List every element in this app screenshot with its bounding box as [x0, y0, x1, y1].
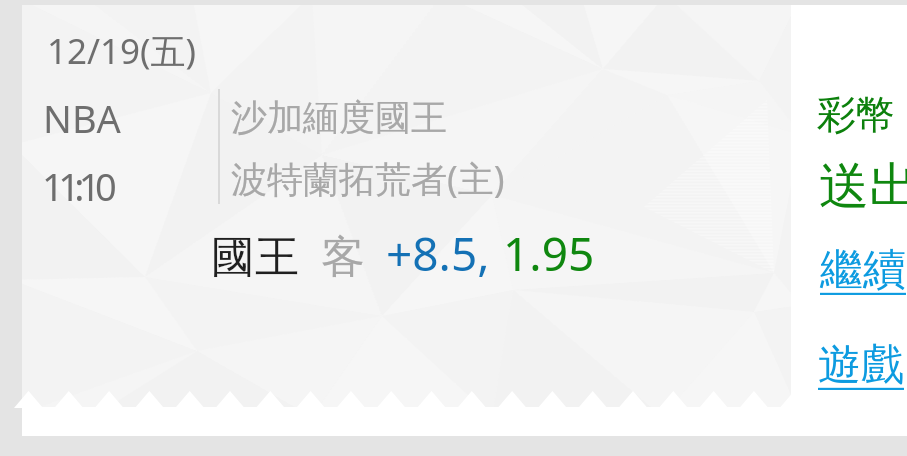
button[interactable]: 繼續 [820, 243, 906, 297]
staticText: NBA [43, 92, 121, 144]
staticText: 國王 [211, 230, 299, 285]
staticText: 送出 [819, 155, 907, 218]
staticText: 沙加緬度國王 [231, 95, 447, 140]
button[interactable]: 12/19(五) [22, 5, 791, 436]
staticText: 1.95 [503, 222, 595, 285]
staticText: 遊戲 [818, 338, 904, 392]
staticText: 客 [321, 230, 365, 285]
staticText: 彩幣 [817, 90, 895, 139]
button[interactable]: 遊戲 [818, 338, 904, 392]
staticText: 12/19(五) [47, 27, 197, 75]
staticText: 繼續 [820, 243, 906, 297]
button[interactable]: 送出 [819, 155, 907, 218]
staticText: 11:10 [42, 160, 112, 212]
staticText: 波特蘭拓荒者(主) [231, 154, 505, 203]
staticText: +8.5, [386, 222, 490, 285]
button[interactable]: 彩幣 [817, 90, 895, 139]
